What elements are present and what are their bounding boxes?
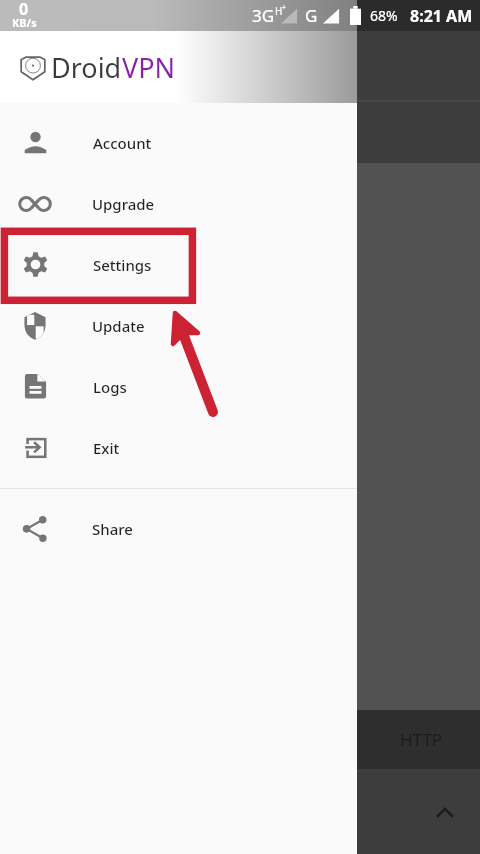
button[interactable]: Account [0,112,357,173]
button[interactable]: Expand [437,806,453,822]
button[interactable]: Logs [0,356,357,417]
staticText: G [305,4,318,27]
staticText: Share [92,519,133,539]
staticText: Update [92,316,145,336]
button[interactable]: Settings [0,234,357,295]
staticText: 8:21 AM [410,5,473,27]
staticText: Upgrade [92,194,155,214]
button[interactable]: Upgrade [0,173,357,234]
staticText: VPN [122,49,176,86]
staticText: 0 [19,0,29,20]
button[interactable]: Exit [0,417,357,478]
staticText: 68% [370,6,398,25]
staticText: Exit [93,438,120,458]
staticText: Logs [93,377,127,397]
button[interactable]: Share [0,498,357,559]
staticText: Account [93,133,152,153]
staticText: + [282,3,287,13]
staticText: Settings [93,255,152,275]
staticText: HTTP [400,728,443,751]
staticText: KB/s [12,15,37,30]
button[interactable]: Update [0,295,357,356]
staticText: 3G [252,4,275,27]
staticText: Droid [51,49,122,86]
staticText: H [275,4,283,18]
